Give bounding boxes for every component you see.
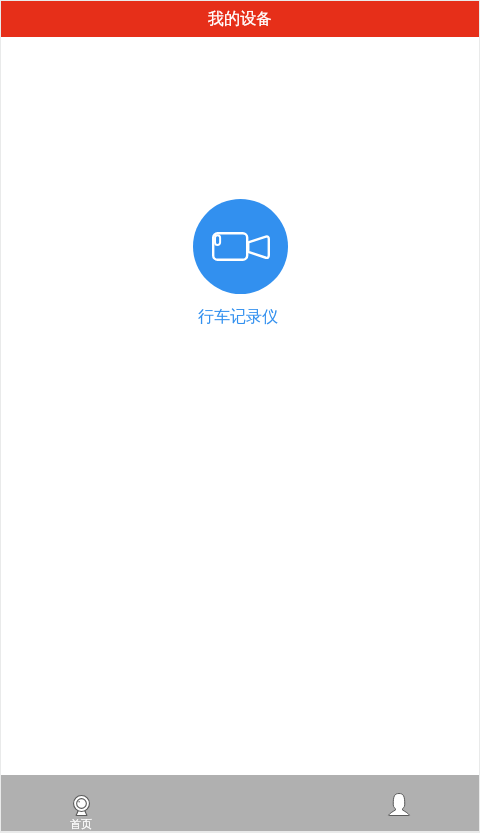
staticText: 首页 [70, 817, 92, 831]
button[interactable]: 行车记录仪 [193, 199, 288, 327]
staticText: 行车记录仪 [198, 307, 278, 327]
staticText: 我的设备 [208, 9, 272, 29]
button[interactable]: Profile [320, 775, 479, 831]
button[interactable]: 首页 [1, 775, 161, 831]
